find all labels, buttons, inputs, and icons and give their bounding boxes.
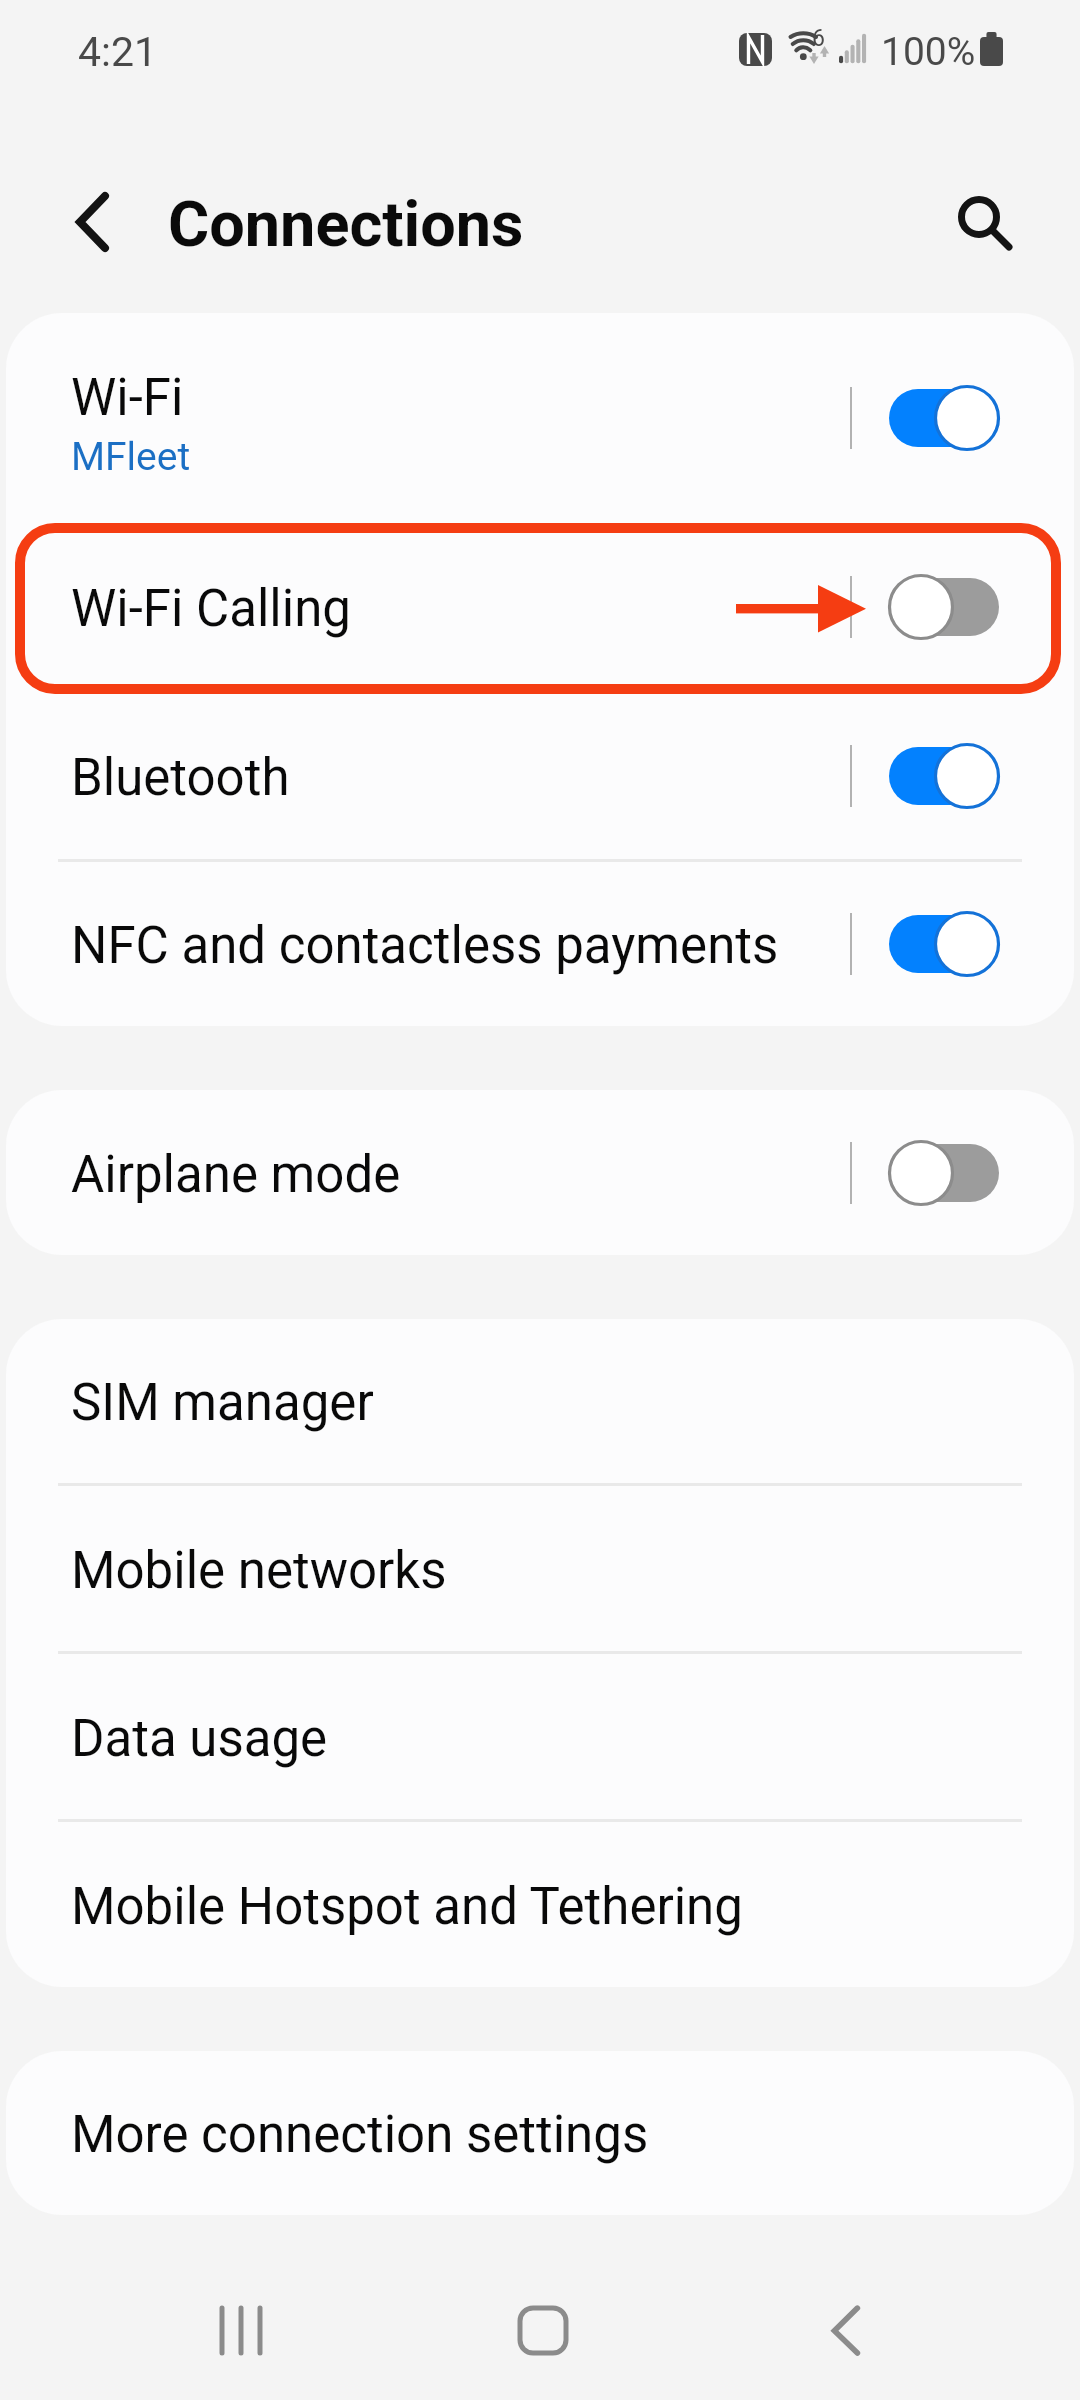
staticText: 6 <box>812 25 825 52</box>
button[interactable]: Wi-Fi Calling <box>6 523 1074 690</box>
button[interactable]: Toggle <box>888 384 999 452</box>
staticText: More connection settings <box>71 2105 649 2165</box>
button[interactable]: NFC and contactless payments <box>6 862 1074 1026</box>
button[interactable]: Toggle <box>888 742 999 810</box>
button[interactable]: Toggle <box>888 910 999 978</box>
staticText: Airplane mode <box>71 1145 401 1205</box>
button[interactable]: SIM manager <box>6 1319 1074 1483</box>
button[interactable]: Toggle <box>888 1139 999 1207</box>
staticText: Wi-Fi <box>71 368 184 428</box>
staticText: Mobile networks <box>71 1541 447 1601</box>
button[interactable]: Recent apps <box>180 2268 300 2388</box>
staticText: SIM manager <box>71 1373 374 1433</box>
button[interactable]: More connection settings <box>6 2051 1074 2215</box>
button[interactable]: Mobile Hotspot and Tethering <box>6 1822 1074 1987</box>
staticText: Data usage <box>71 1709 328 1769</box>
button[interactable]: Airplane mode <box>6 1090 1074 1255</box>
staticText: 4:21 <box>78 28 158 76</box>
button[interactable]: Search <box>936 173 1022 259</box>
staticText: 100% <box>881 29 976 75</box>
button[interactable]: Back <box>794 2268 914 2388</box>
staticText: Mobile Hotspot and Tethering <box>71 1877 743 1937</box>
button[interactable]: Bluetooth <box>6 693 1074 859</box>
staticText: Bluetooth <box>71 748 290 808</box>
button[interactable]: Wi-Fi <box>6 313 1074 523</box>
button[interactable]: Home <box>483 2268 603 2388</box>
staticText: NFC and contactless payments <box>71 916 779 976</box>
staticText: Wi-Fi Calling <box>71 579 351 639</box>
button[interactable]: Data usage <box>6 1654 1074 1819</box>
button[interactable]: Mobile networks <box>6 1486 1074 1651</box>
button[interactable]: Back <box>50 174 136 260</box>
staticText: Connections <box>168 188 524 262</box>
button[interactable]: Toggle <box>888 573 999 641</box>
staticText: MFleet <box>71 434 191 480</box>
